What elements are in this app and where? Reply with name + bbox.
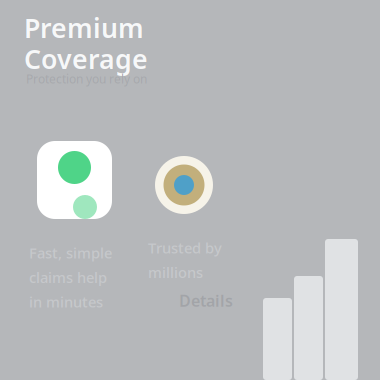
button[interactable]: Fast claims bbox=[37, 141, 112, 219]
staticText: millions bbox=[148, 262, 203, 282]
button[interactable]: Trusted cover bbox=[155, 156, 213, 214]
staticText: Trusted by bbox=[148, 238, 222, 257]
staticText: in minutes bbox=[29, 292, 103, 311]
staticText: claims help bbox=[29, 267, 107, 287]
staticText: Protection you rely on bbox=[26, 71, 147, 87]
button[interactable]: Details bbox=[179, 290, 233, 311]
staticText: Details bbox=[179, 290, 233, 311]
staticText: Premium bbox=[24, 10, 144, 45]
staticText: Coverage bbox=[24, 41, 148, 76]
staticText: Fast, simple bbox=[29, 243, 112, 262]
